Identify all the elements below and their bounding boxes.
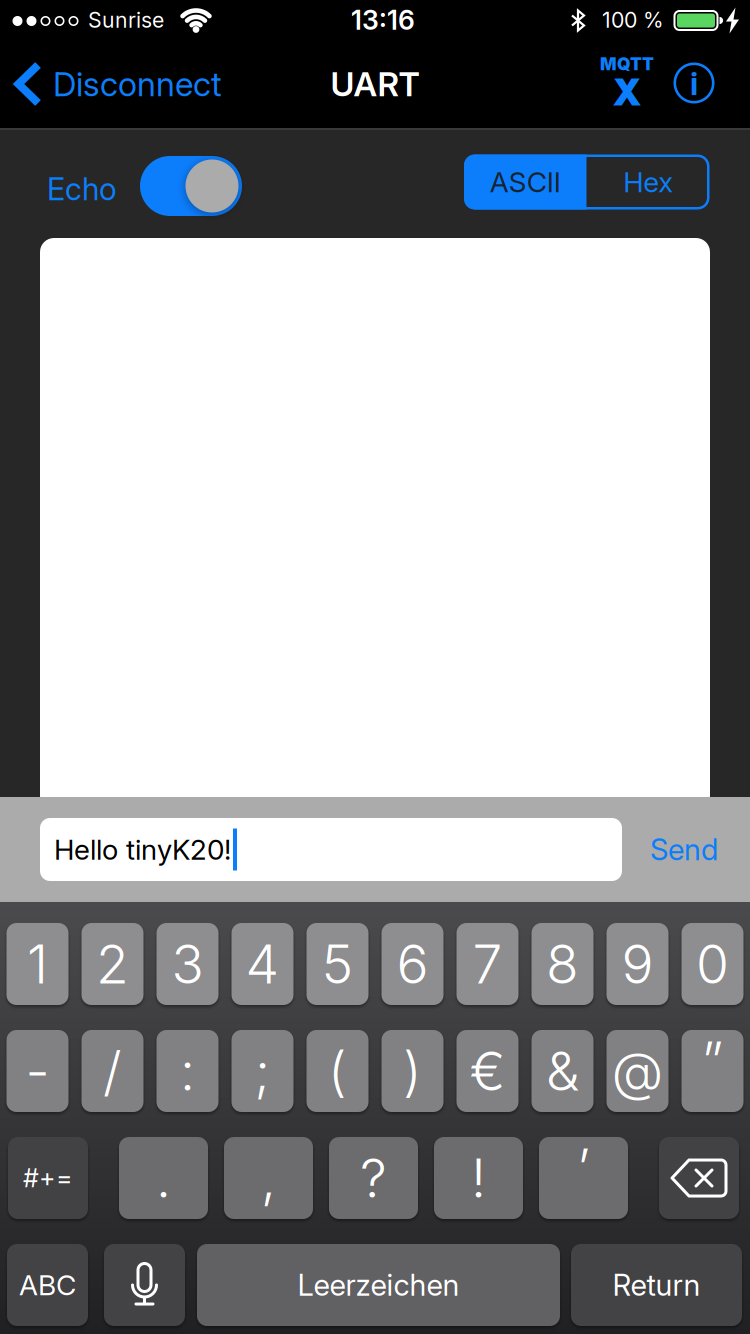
staticText: ASCII [490,165,561,198]
staticText: MQTT [600,54,654,74]
staticText: 100 % [602,7,664,33]
button[interactable]: 1 [6,923,68,1005]
staticText: @ [611,1039,663,1102]
staticText: i [689,62,698,104]
staticText: & [546,1039,579,1102]
staticText: . [156,1146,171,1209]
staticText: Disconnect [53,64,222,104]
staticText: 9 [621,932,653,995]
staticText: Sunrise [88,7,164,33]
staticText: 13:16 [351,4,415,36]
button[interactable]: - [6,1030,68,1112]
button[interactable]: ’ [539,1137,628,1219]
staticText: 5 [321,932,353,995]
staticText: ) [403,1039,422,1102]
staticText: 3 [171,932,203,995]
button[interactable]: ; [231,1030,293,1112]
button[interactable]: MQTTX [592,54,662,112]
staticText: 2 [96,932,129,995]
button[interactable]: € [456,1030,518,1112]
button[interactable]: ABC [7,1244,88,1326]
button[interactable]: ! [434,1137,523,1219]
staticText: 4 [245,932,279,995]
button[interactable]: Dictate [104,1244,185,1326]
button[interactable]: 5 [306,923,368,1005]
button[interactable]: 6 [381,923,443,1005]
staticText: Echo [47,171,117,207]
staticText: € [469,1039,505,1102]
staticText: ABC [19,1268,76,1301]
staticText: ; [254,1039,270,1102]
staticText: ’ [577,1136,590,1199]
button[interactable]: 0 [681,923,743,1005]
button[interactable]: ASCII [464,154,586,209]
staticText: X [613,70,641,114]
staticText: Leerzeichen [297,1268,459,1302]
staticText: #+= [23,1163,73,1193]
button[interactable]: Leerzeichen [197,1244,560,1326]
button[interactable]: 3 [156,923,218,1005]
staticText: ” [701,1029,723,1092]
button[interactable]: Info [672,61,716,105]
button[interactable]: . [119,1137,208,1219]
staticText: - [25,1039,49,1102]
button[interactable]: Return [571,1244,742,1326]
button[interactable]: Delete [659,1137,739,1219]
button[interactable]: 2 [81,923,143,1005]
button[interactable]: , [224,1137,313,1219]
staticText: 6 [396,932,428,995]
button[interactable]: 8 [531,923,593,1005]
staticText: Hello tinyK20! [54,833,231,866]
button[interactable]: ” [681,1030,743,1112]
staticText: / [103,1039,122,1102]
button[interactable]: @ [606,1030,668,1112]
button[interactable]: Disconnect [14,62,222,105]
staticText: Send [650,832,718,867]
button[interactable]: ? [329,1137,418,1219]
button[interactable]: Echo [140,156,242,216]
staticText: 8 [546,932,579,995]
staticText: 7 [472,932,502,995]
button[interactable]: Hex [587,154,709,209]
staticText: UART [330,64,419,104]
staticText: 0 [696,932,729,995]
button[interactable]: : [156,1030,218,1112]
button[interactable]: 9 [606,923,668,1005]
button[interactable]: ) [381,1030,443,1112]
staticText: ( [328,1039,347,1102]
staticText: Hex [623,165,673,198]
staticText: : [180,1039,195,1102]
button[interactable]: Message field [40,818,622,881]
staticText: , [261,1146,276,1209]
button[interactable]: / [81,1030,143,1112]
button[interactable]: & [531,1030,593,1112]
staticText: Return [612,1268,700,1302]
button[interactable]: Send [629,818,739,881]
button[interactable]: 7 [456,923,518,1005]
staticText: ? [360,1146,387,1209]
staticText: 1 [27,932,48,995]
button[interactable]: #+= [8,1137,88,1219]
button[interactable]: 4 [231,923,293,1005]
button[interactable]: ( [306,1030,368,1112]
staticText: ! [471,1146,486,1209]
